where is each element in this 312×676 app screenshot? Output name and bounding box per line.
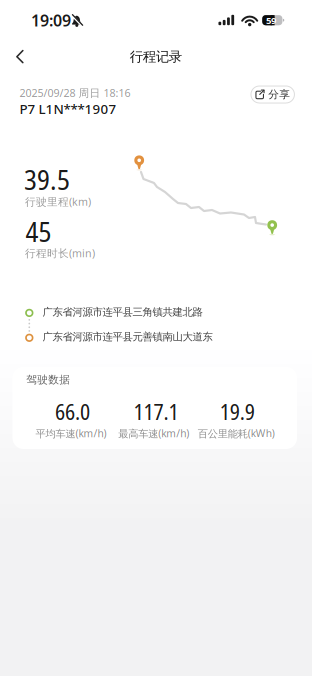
staticText: 19.9 [220, 397, 255, 426]
button[interactable]: Back [2, 39, 38, 73]
staticText: 广东省河源市连平县元善镇南山大道东 [43, 330, 213, 343]
button[interactable]: 分享 [251, 86, 294, 103]
staticText: 39.5 [24, 161, 70, 198]
staticText: 行程时长(min) [25, 246, 95, 260]
staticText: 66.0 [55, 397, 90, 426]
staticText: 2025/09/28 周日 18:16 [19, 86, 130, 100]
staticText: 45 [25, 213, 51, 250]
staticText: 驾驶数据 [26, 373, 70, 386]
staticText: 平均车速(km/h) [35, 426, 106, 440]
staticText: 分享 [268, 88, 290, 101]
staticText: 59 [266, 14, 276, 26]
staticText: 广东省河源市连平县三角镇共建北路 [43, 306, 203, 318]
staticText: P7 L1N***1907 [19, 100, 116, 118]
staticText: 117.1 [133, 397, 178, 426]
staticText: 行驶里程(km) [25, 194, 91, 209]
staticText: 最高车速(km/h) [118, 426, 189, 440]
staticText: 19:09 [31, 10, 71, 31]
staticText: 百公里能耗(kWh) [198, 426, 275, 440]
staticText: 行程记录 [130, 48, 182, 65]
